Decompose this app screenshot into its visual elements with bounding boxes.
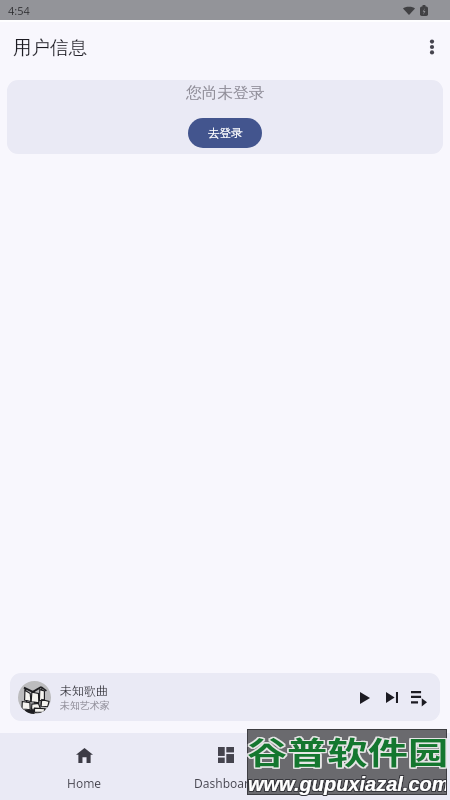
- button[interactable]: More options: [408, 26, 450, 68]
- button[interactable]: Notifications: [296, 733, 437, 800]
- staticText: 去登录: [208, 126, 243, 140]
- staticText: www.gupuxiazal.com: [249, 773, 447, 795]
- staticText: Notifications: [331, 775, 403, 791]
- button[interactable]: Play: [351, 684, 378, 711]
- staticText: 谷普软件园: [245, 729, 447, 774]
- staticText: www.gupuxiazal.com: [248, 773, 446, 795]
- button[interactable]: 去登录: [188, 118, 262, 148]
- staticText: 未知歌曲: [60, 683, 108, 698]
- staticText: 谷普软件园: [245, 728, 447, 773]
- staticText: 4:54: [8, 3, 30, 18]
- staticText: 未知艺术家: [60, 699, 110, 712]
- button[interactable]: Dashboard: [155, 733, 296, 800]
- staticText: 您尚未登录: [186, 83, 265, 103]
- staticText: www.gupuxiazal.com: [247, 774, 445, 796]
- staticText: www.gupuxiazal.com: [247, 773, 445, 795]
- staticText: 谷普软件园: [248, 728, 450, 773]
- staticText: www.gupuxiazal.com: [248, 774, 446, 796]
- staticText: 谷普软件园: [245, 727, 447, 772]
- staticText: www.gupuxiazal.com: [249, 772, 447, 794]
- button[interactable]: Playlist queue: [405, 683, 433, 711]
- staticText: Home: [67, 775, 102, 791]
- staticText: 谷普软件园: [248, 727, 450, 772]
- button[interactable]: Home: [13, 733, 155, 800]
- staticText: 谷普软件园: [247, 727, 448, 772]
- staticText: 谷普软件园: [248, 729, 450, 774]
- button[interactable]: Next track: [378, 684, 405, 711]
- button[interactable]: 未知歌曲: [10, 673, 440, 721]
- staticText: 谷普软件园: [247, 729, 448, 774]
- staticText: www.gupuxiazal.com: [247, 772, 445, 794]
- staticText: 谷普软件园: [247, 728, 448, 773]
- staticText: www.gupuxiazal.com: [248, 772, 446, 794]
- staticText: Dashboard: [194, 775, 257, 791]
- staticText: 用户信息: [13, 36, 87, 59]
- staticText: www.gupuxiazal.com: [249, 774, 447, 796]
